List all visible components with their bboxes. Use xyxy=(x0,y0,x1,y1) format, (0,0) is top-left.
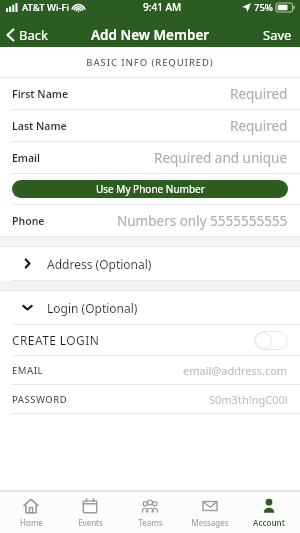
staticText: S0m3th!ngC00l xyxy=(209,392,288,407)
button[interactable]: Save xyxy=(255,22,300,47)
button[interactable]: Messages xyxy=(181,492,239,533)
staticText: Save xyxy=(263,26,292,43)
button[interactable]: CREATE LOGIN xyxy=(0,325,300,355)
button[interactable]: Create login toggle xyxy=(254,331,288,350)
button[interactable]: PASSWORD xyxy=(0,385,300,413)
button[interactable]: Last Name xyxy=(0,110,300,141)
staticText: AT&T Wi-Fi xyxy=(22,1,70,14)
staticText: PASSWORD xyxy=(12,393,68,406)
staticText: Home xyxy=(20,517,43,528)
staticText: Address (Optional) xyxy=(47,256,152,272)
staticText: BASIC INFO (REQUIRED) xyxy=(86,56,214,69)
staticText: 75% xyxy=(254,1,273,14)
staticText: Account xyxy=(253,517,285,528)
staticText: Teams xyxy=(138,517,163,528)
button[interactable]: Account xyxy=(240,492,298,533)
button[interactable]: Phone xyxy=(0,205,300,236)
button[interactable]: Address (Optional) xyxy=(0,247,300,280)
staticText: Phone xyxy=(12,214,45,228)
button[interactable]: Login (Optional) xyxy=(0,291,300,324)
staticText: Back xyxy=(19,26,48,44)
staticText: CREATE LOGIN xyxy=(12,332,100,348)
staticText: Login (Optional) xyxy=(47,300,138,316)
staticText: Events xyxy=(78,517,103,528)
button[interactable]: EMAIL xyxy=(0,356,300,384)
staticText: First Name xyxy=(12,87,69,101)
button[interactable]: Teams xyxy=(121,492,179,533)
staticText: 9:41 AM xyxy=(143,0,182,14)
staticText: EMAIL xyxy=(12,364,44,377)
button[interactable]: First Name xyxy=(0,78,300,109)
button[interactable]: Events xyxy=(61,492,119,533)
staticText: Email xyxy=(12,151,41,165)
staticText: Use My Phone Number xyxy=(96,182,205,196)
button[interactable]: Home xyxy=(2,492,60,533)
staticText: Required and unique xyxy=(154,149,288,167)
staticText: Numbers only 5555555555 xyxy=(117,212,288,230)
button[interactable]: Email xyxy=(0,142,300,173)
button[interactable]: Use My Phone Number xyxy=(12,180,288,198)
button[interactable]: Back xyxy=(0,23,56,47)
staticText: email@address.com xyxy=(183,363,288,378)
staticText: Last Name xyxy=(12,119,67,133)
staticText: Add New Member xyxy=(91,26,210,44)
staticText: Required xyxy=(230,85,288,103)
staticText: Messages xyxy=(191,517,229,528)
staticText: Required xyxy=(230,117,288,135)
